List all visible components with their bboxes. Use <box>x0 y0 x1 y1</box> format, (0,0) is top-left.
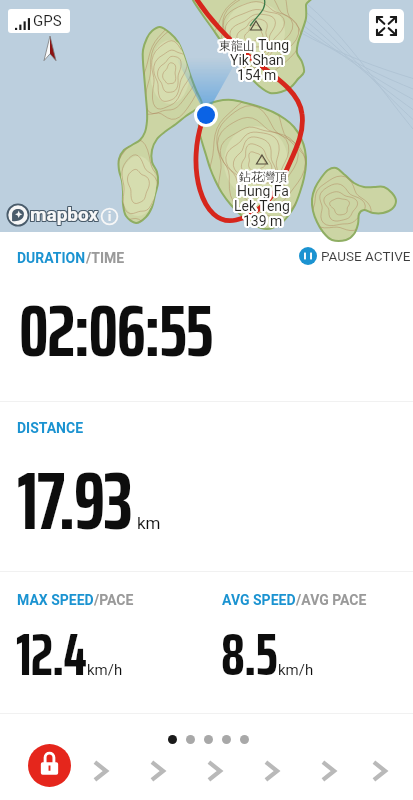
staticText: Tung <box>256 37 288 53</box>
staticText: 154 m <box>239 67 279 83</box>
staticText: Tung <box>258 38 290 54</box>
staticText: 東龍山 <box>218 40 254 55</box>
staticText: 鉆花灣頂 <box>238 169 286 184</box>
staticText: 鉆花灣頂 <box>240 171 288 186</box>
staticText: 139 m <box>241 213 281 229</box>
staticText: 鉆花灣頂 <box>240 168 288 183</box>
staticText: Lek Teng <box>233 198 289 214</box>
staticText: 154 m <box>237 68 277 84</box>
staticText: 02:06:55 <box>19 272 213 388</box>
staticText: Lek Teng <box>233 199 289 215</box>
staticText: /AVG PACE <box>296 592 367 608</box>
staticText: 東龍山 <box>217 37 253 52</box>
staticText: 東龍山 <box>221 38 257 53</box>
staticText: 鉆花灣頂 <box>238 167 286 182</box>
staticText: Hung Fa <box>237 185 289 201</box>
staticText: Tung <box>258 39 290 55</box>
staticText: 154 m <box>239 68 279 84</box>
button[interactable]: Mapbox <box>6 203 30 227</box>
staticText: Yik Shan <box>230 52 284 68</box>
staticText: 12.4 <box>16 608 86 701</box>
staticText: Lek Teng <box>234 200 290 216</box>
staticText: 139 m <box>244 214 284 230</box>
staticText: Yik Shan <box>230 50 284 66</box>
staticText: Hung Fa <box>236 184 288 200</box>
staticText: i <box>108 210 112 224</box>
staticText: km <box>137 513 161 533</box>
staticText: 鉆花灣頂 <box>237 170 285 185</box>
staticText: 139 m <box>242 214 282 230</box>
staticText: Yik Shan <box>230 54 284 70</box>
staticText: 154 m <box>237 67 277 83</box>
staticText: Tung <box>259 35 291 51</box>
staticText: 鉆花灣頂 <box>240 167 288 182</box>
staticText: Lek Teng <box>236 197 292 213</box>
staticText: 154 m <box>235 66 275 82</box>
staticText: DISTANCE <box>17 420 84 436</box>
button[interactable]: Unlock to stop <box>28 744 71 787</box>
staticText: 154 m <box>236 67 276 83</box>
staticText: Hung Fa <box>238 182 290 198</box>
staticText: GPS <box>33 12 62 30</box>
staticText: 東龍山 <box>220 37 256 52</box>
staticText: 154 m <box>237 66 277 82</box>
staticText: 東龍山 <box>220 40 256 55</box>
staticText: mapbox <box>31 204 100 226</box>
staticText: 139 m <box>243 212 283 228</box>
staticText: 139 m <box>245 214 285 230</box>
staticText: mapbox <box>29 202 98 224</box>
staticText: Yik Shan <box>230 53 284 69</box>
staticText: Yik Shan <box>228 52 282 68</box>
button[interactable]: Expand map <box>369 9 404 43</box>
staticText: 東龍山 <box>219 38 255 53</box>
staticText: km/h <box>278 661 314 679</box>
staticText: 東龍山 <box>221 39 257 54</box>
staticText: Yik Shan <box>228 51 282 67</box>
button[interactable]: PAUSE ACTIVE <box>294 244 413 268</box>
staticText: Lek Teng <box>234 199 290 215</box>
staticText: mapbox <box>30 204 99 226</box>
staticText: 139 m <box>243 214 283 230</box>
staticText: 154 m <box>235 67 275 83</box>
staticText: Tung <box>260 37 292 53</box>
staticText: Hung Fa <box>239 184 291 200</box>
staticText: Hung Fa <box>236 181 288 197</box>
button[interactable]: Map attribution info <box>101 208 118 225</box>
staticText: 東龍山 <box>219 39 255 54</box>
staticText: Yik Shan <box>232 53 286 69</box>
staticText: Hung Fa <box>238 183 290 199</box>
staticText: Tung <box>257 36 289 52</box>
staticText: 154 m <box>236 68 276 84</box>
staticText: 139 m <box>243 211 283 227</box>
staticText: 東龍山 <box>218 37 254 52</box>
staticText: Lek Teng <box>234 198 290 214</box>
staticText: 東龍山 <box>218 36 254 51</box>
staticText: Lek Teng <box>233 196 289 212</box>
staticText: 鉆花灣頂 <box>238 171 286 186</box>
staticText: 154 m <box>235 68 275 84</box>
staticText: km/h <box>87 661 123 679</box>
staticText: 154 m <box>236 69 276 85</box>
button[interactable]: GPS signal <box>8 9 70 33</box>
staticText: Tung <box>260 38 292 54</box>
staticText: 鉆花灣頂 <box>239 169 287 184</box>
staticText: 139 m <box>242 212 282 228</box>
staticText: 154 m <box>236 65 276 81</box>
staticText: 154 m <box>239 66 279 82</box>
staticText: 東龍山 <box>219 40 255 55</box>
staticText: Tung <box>259 36 291 52</box>
staticText: Lek Teng <box>234 197 290 213</box>
staticText: 139 m <box>241 212 281 228</box>
staticText: 154 m <box>237 69 277 85</box>
staticText: Tung <box>256 36 288 52</box>
staticText: Lek Teng <box>236 198 292 214</box>
staticText: Hung Fa <box>235 184 287 200</box>
staticText: Hung Fa <box>239 183 291 199</box>
staticText: Hung Fa <box>236 183 288 199</box>
staticText: 東龍山 <box>219 37 255 52</box>
staticText: 東龍山 <box>221 37 257 52</box>
staticText: Hung Fa <box>238 184 290 200</box>
staticText: 鉆花灣頂 <box>239 171 287 186</box>
staticText: 154 m <box>238 65 278 81</box>
staticText: Yik Shan <box>229 53 283 69</box>
